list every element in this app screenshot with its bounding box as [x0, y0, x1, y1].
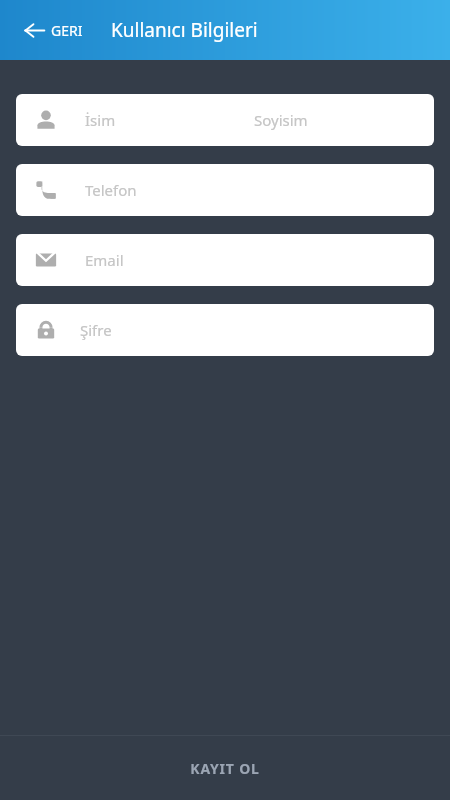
staticText: İsim — [85, 110, 116, 130]
button[interactable]: Şifre — [16, 304, 434, 356]
button[interactable]: İsim — [16, 94, 434, 146]
staticText: KAYIT OL — [190, 759, 260, 778]
button[interactable]: Email — [16, 234, 434, 286]
staticText: Telefon — [85, 180, 137, 200]
button[interactable]: KAYIT OL — [0, 736, 450, 800]
staticText: Şifre — [80, 320, 112, 340]
other: Back — [24, 20, 45, 41]
staticText: Email — [85, 250, 124, 270]
button[interactable]: Back — [20, 12, 87, 49]
button[interactable]: Telefon — [16, 164, 434, 216]
staticText: GERI — [51, 21, 83, 40]
staticText: Soyisim — [254, 110, 308, 130]
staticText: Kullanıcı Bilgileri — [111, 17, 258, 43]
